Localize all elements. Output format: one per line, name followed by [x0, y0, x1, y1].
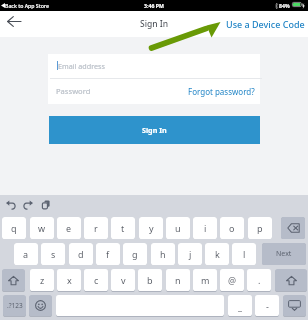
button[interactable]: Redo [22, 198, 34, 210]
button[interactable]: v [111, 269, 135, 291]
button[interactable]: Emoji [29, 295, 52, 316]
staticText: w [38, 222, 46, 234]
button[interactable]: j [178, 243, 202, 265]
staticText: .?123 [7, 301, 23, 310]
button[interactable]: Hide keyboard [283, 295, 306, 316]
staticText: j [189, 248, 192, 260]
button[interactable]: d [69, 243, 93, 265]
button[interactable]: a [14, 243, 38, 265]
button[interactable]: - [255, 295, 279, 316]
staticText: Use a Device Code [226, 18, 305, 30]
button[interactable]: h [151, 243, 175, 265]
button[interactable]: b [138, 269, 162, 291]
staticText: h [160, 248, 166, 260]
staticText: i [204, 222, 207, 234]
button[interactable]: r [84, 217, 108, 239]
button[interactable]: x [57, 269, 81, 291]
button[interactable]: m [193, 269, 217, 291]
staticText: Email address [58, 61, 105, 71]
staticText: _ [238, 300, 242, 312]
staticText: q [11, 222, 17, 234]
staticText: s [51, 248, 56, 260]
button[interactable]: g [123, 243, 147, 265]
button[interactable]: l [232, 243, 256, 265]
staticText: y [149, 222, 154, 234]
staticText: n [175, 274, 181, 286]
staticText: a [23, 248, 29, 260]
button[interactable]: Use a Device Code [220, 13, 308, 35]
staticText: . [258, 274, 261, 286]
button[interactable]: Sign In [49, 116, 260, 144]
button[interactable]: Undo [5, 198, 17, 210]
staticText: m [201, 274, 210, 286]
staticText: 84% [279, 2, 290, 9]
staticText: p [257, 222, 263, 234]
button[interactable]: .?123 [3, 295, 26, 316]
button[interactable]: @ [220, 269, 244, 291]
staticText: c [94, 274, 99, 286]
button[interactable]: Shift [275, 269, 307, 291]
staticText: Password [56, 86, 91, 96]
button[interactable]: i [193, 217, 217, 239]
button[interactable]: o [220, 217, 244, 239]
button[interactable]: n [166, 269, 190, 291]
button[interactable]: s [41, 243, 65, 265]
staticText: b [147, 274, 153, 286]
button[interactable]: _ [228, 295, 252, 316]
staticText: g [132, 248, 138, 260]
staticText: d [78, 248, 84, 260]
button[interactable]: Paste [40, 198, 52, 210]
button[interactable]: . [247, 269, 271, 291]
staticText: x [67, 274, 72, 286]
staticText: 3:46 PM [144, 2, 164, 9]
button[interactable]: t [111, 217, 135, 239]
staticText: l [243, 248, 246, 260]
button[interactable]: c [84, 269, 108, 291]
staticText: t [121, 222, 125, 234]
button[interactable]: p [248, 217, 272, 239]
staticText: o [229, 222, 235, 234]
button[interactable]: Email address [48, 54, 260, 78]
button[interactable]: e [57, 217, 81, 239]
staticText: - [266, 300, 269, 312]
staticText: Back to App Store [5, 2, 49, 9]
button[interactable]: w [30, 217, 54, 239]
staticText: u [175, 222, 181, 234]
button[interactable]: z [30, 269, 54, 291]
button[interactable]: Backspace [281, 217, 305, 239]
button[interactable]: u [166, 217, 190, 239]
staticText: f [106, 248, 110, 260]
staticText: k [215, 248, 220, 260]
staticText: v [121, 274, 126, 286]
button[interactable]: Back [1, 11, 27, 37]
button[interactable]: k [205, 243, 229, 265]
staticText: Sign In [142, 125, 167, 135]
button[interactable]: Forgot password? [183, 82, 260, 101]
button[interactable]: Next [262, 243, 306, 265]
button[interactable]: y [139, 217, 163, 239]
staticText: e [66, 222, 72, 234]
staticText: Sign In [140, 18, 169, 30]
staticText: Next [276, 249, 292, 259]
staticText: Forgot password? [188, 86, 255, 97]
staticText: @ [228, 274, 237, 286]
staticText: r [94, 222, 98, 234]
button[interactable]: f [96, 243, 120, 265]
staticText: z [40, 274, 45, 286]
button[interactable]: Shift [2, 269, 25, 291]
button[interactable]: q [2, 217, 26, 239]
